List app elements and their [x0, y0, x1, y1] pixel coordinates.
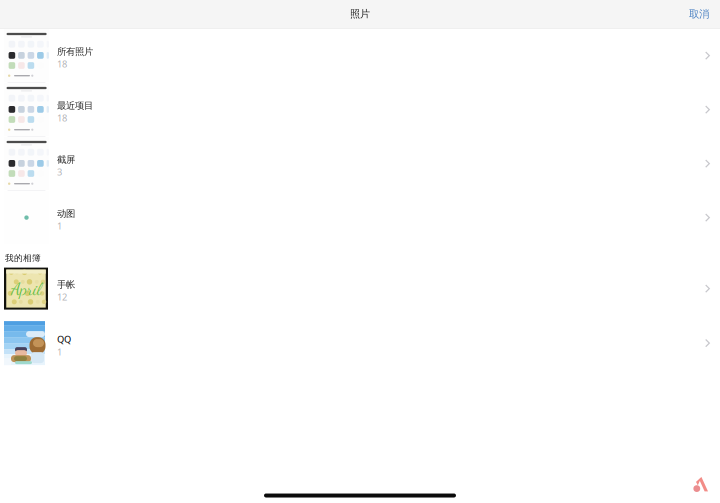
staticText: 我的相簿: [5, 253, 41, 263]
staticText: 1: [57, 346, 62, 358]
button[interactable]: 取消: [689, 1, 720, 26]
staticText: 照片: [350, 8, 370, 20]
staticText: 1: [57, 220, 62, 232]
staticText: April: [11, 278, 41, 299]
button[interactable]: April: [0, 262, 720, 316]
staticText: 截屏: [57, 154, 75, 166]
staticText: 所有照片: [57, 46, 93, 58]
staticText: 18: [57, 112, 67, 124]
button[interactable]: QQ: [0, 316, 720, 371]
button[interactable]: 截屏: [0, 137, 720, 191]
button[interactable]: 最近项目: [0, 83, 720, 137]
button[interactable]: 动图: [0, 191, 720, 245]
staticText: 最近项目: [57, 100, 93, 112]
staticText: 动图: [57, 208, 75, 220]
button[interactable]: 所有照片: [0, 29, 720, 83]
staticText: 3: [57, 166, 62, 178]
staticText: 取消: [689, 7, 709, 20]
staticText: 18: [57, 58, 67, 70]
staticText: QQ: [57, 333, 71, 346]
staticText: 手帐: [57, 279, 75, 291]
staticText: 12: [57, 291, 67, 303]
